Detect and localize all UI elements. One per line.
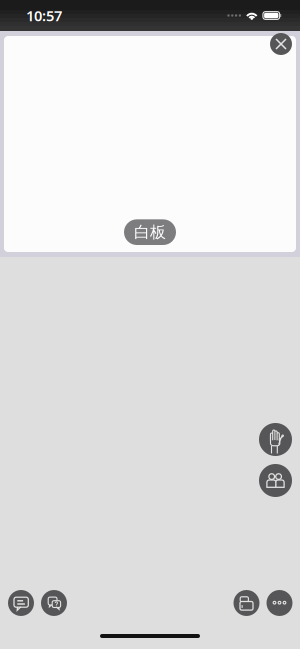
button[interactable]: Raise hand — [259, 423, 292, 456]
button[interactable]: Share screen — [233, 590, 259, 616]
button[interactable]: Close — [270, 33, 292, 55]
button[interactable]: Participants — [259, 464, 292, 497]
staticText: 10:57 — [26, 6, 62, 25]
button[interactable]: More — [266, 590, 292, 616]
button[interactable]: Chat — [8, 590, 34, 616]
button[interactable]: Q and A — [41, 590, 67, 616]
staticText: 白板 — [134, 222, 166, 242]
